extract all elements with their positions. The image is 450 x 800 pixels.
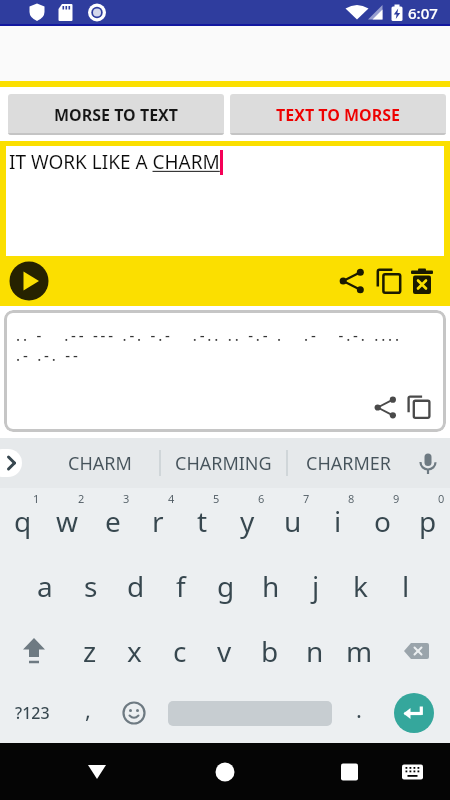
staticText: o: [374, 502, 391, 540]
button[interactable]: g: [203, 553, 248, 618]
button[interactable]: 2: [45, 488, 90, 553]
button[interactable]: f: [158, 553, 203, 618]
button[interactable]: d: [113, 553, 158, 618]
staticText: f: [176, 567, 186, 605]
staticText: ,: [85, 694, 91, 724]
button[interactable]: 9: [360, 488, 405, 553]
staticText: t: [197, 502, 208, 540]
staticText: l: [402, 567, 410, 605]
staticText: 6:07: [408, 3, 438, 23]
button[interactable]: CHARM: [40, 438, 160, 488]
staticText: n: [306, 632, 324, 670]
button[interactable]: a: [22, 553, 68, 618]
staticText: 0: [438, 491, 445, 506]
staticText: c: [173, 632, 187, 670]
staticText: .: [356, 694, 362, 724]
button[interactable]: [375, 267, 403, 295]
staticText: 9: [393, 491, 400, 506]
staticText: e: [105, 502, 121, 540]
button[interactable]: 3: [90, 488, 135, 553]
staticText: s: [84, 567, 98, 605]
button[interactable]: [111, 683, 157, 743]
button[interactable]: [416, 452, 440, 476]
staticText: 7: [303, 491, 310, 506]
staticText: p: [419, 502, 437, 540]
button[interactable]: ,: [65, 683, 111, 743]
staticText: y: [240, 502, 255, 540]
button[interactable]: j: [293, 553, 338, 618]
button[interactable]: CHARMER: [290, 438, 407, 488]
staticText: 1: [33, 491, 40, 506]
button[interactable]: MORSE TO TEXT: [8, 94, 224, 135]
staticText: q: [14, 502, 32, 540]
button[interactable]: s: [68, 553, 113, 618]
button[interactable]: 4: [135, 488, 180, 553]
button[interactable]: v: [202, 618, 247, 683]
button[interactable]: [0, 743, 450, 800]
staticText: g: [217, 567, 235, 605]
button[interactable]: 8: [315, 488, 360, 553]
button[interactable]: [0, 618, 68, 683]
staticText: v: [217, 632, 232, 670]
button[interactable]: z: [68, 618, 112, 683]
button[interactable]: 5: [180, 488, 225, 553]
staticText: IT WORK LIKE A CHARM: [9, 149, 220, 175]
button[interactable]: h: [248, 553, 293, 618]
staticText: .. - .-- --- .-. -.- .-.. .. -.- . .- -.…: [16, 325, 402, 345]
staticText: a: [37, 567, 53, 605]
staticText: z: [83, 632, 97, 670]
staticText: b: [261, 632, 279, 670]
button[interactable]: l: [383, 553, 428, 618]
button[interactable]: 1: [0, 488, 45, 553]
button[interactable]: 0: [405, 488, 450, 553]
staticText: ?123: [15, 702, 50, 724]
staticText: h: [262, 567, 280, 605]
button[interactable]: ?123: [0, 683, 65, 743]
staticText: MORSE TO TEXT: [54, 104, 179, 126]
staticText: 2: [78, 491, 85, 506]
staticText: CHARMER: [306, 451, 391, 476]
button[interactable]: b: [247, 618, 292, 683]
button[interactable]: k: [338, 553, 383, 618]
button[interactable]: n: [292, 618, 337, 683]
button[interactable]: m: [337, 618, 382, 683]
button[interactable]: x: [112, 618, 157, 683]
button[interactable]: [408, 267, 436, 295]
button[interactable]: 6: [225, 488, 270, 553]
staticText: k: [353, 567, 368, 605]
button[interactable]: [9, 261, 49, 301]
button[interactable]: 7: [270, 488, 315, 553]
staticText: 3: [123, 491, 130, 506]
button[interactable]: TEXT TO MORSE: [230, 94, 446, 135]
staticText: d: [127, 567, 145, 605]
staticText: 4: [168, 491, 175, 506]
staticText: j: [312, 567, 320, 605]
button[interactable]: c: [157, 618, 202, 683]
button[interactable]: [0, 449, 22, 477]
button[interactable]: [381, 683, 450, 743]
staticText: r: [152, 502, 164, 540]
button[interactable]: CHARMING: [163, 438, 284, 488]
staticText: CHARM: [68, 451, 132, 476]
button[interactable]: .: [337, 683, 381, 743]
staticText: .- .-. --: [16, 345, 81, 365]
staticText: i: [334, 502, 342, 540]
button[interactable]: [374, 396, 397, 419]
button[interactable]: [168, 683, 332, 743]
staticText: CHARMING: [175, 451, 272, 476]
button[interactable]: [406, 394, 432, 420]
button[interactable]: [382, 618, 450, 683]
staticText: w: [56, 502, 79, 540]
button[interactable]: [339, 268, 365, 294]
staticText: TEXT TO MORSE: [276, 104, 401, 126]
staticText: 8: [348, 491, 355, 506]
staticText: m: [346, 632, 373, 670]
staticText: 6: [258, 491, 265, 506]
staticText: 5: [213, 491, 220, 506]
button[interactable]: .. - .-- --- .-. -.- .-.. .. -.- . .- -.…: [4, 310, 446, 432]
button[interactable]: IT WORK LIKE A CHARM: [6, 146, 444, 256]
staticText: x: [127, 632, 142, 670]
staticText: u: [284, 502, 302, 540]
